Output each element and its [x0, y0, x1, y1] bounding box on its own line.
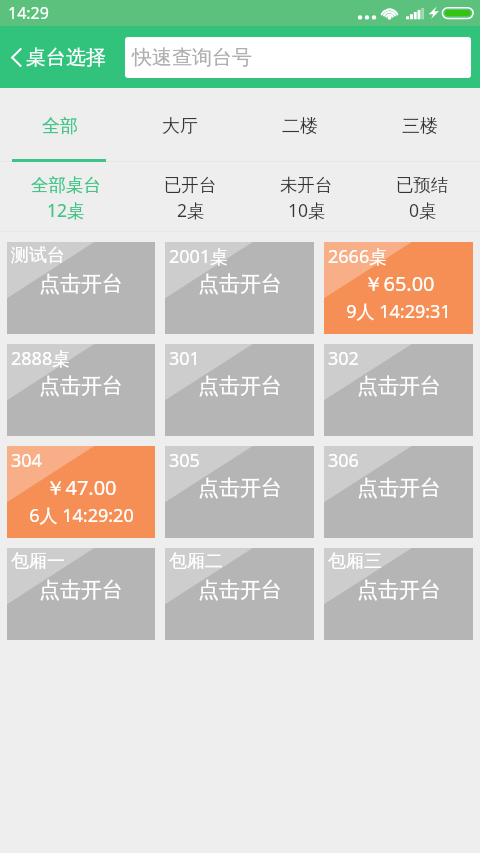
button[interactable]: 测试台	[7, 242, 155, 334]
button[interactable]: 301	[165, 344, 314, 436]
button[interactable]: 快速查询台号	[125, 37, 471, 78]
staticText: 点击开台	[198, 475, 282, 501]
staticText: 302	[328, 346, 359, 371]
button[interactable]: 305	[165, 446, 314, 538]
button[interactable]: 302	[324, 344, 473, 436]
staticText: 测试台	[11, 244, 65, 267]
staticText: 304	[11, 448, 42, 473]
button[interactable]: 2001桌	[165, 242, 314, 334]
staticText: 2666桌	[328, 244, 388, 269]
staticText: 点击开台	[357, 475, 441, 501]
staticText: 2001桌	[169, 244, 229, 269]
staticText: 包厢一	[11, 550, 65, 573]
staticText: 点击开台	[198, 271, 282, 297]
button[interactable]: 大厅	[120, 88, 240, 162]
staticText: 点击开台	[39, 373, 123, 399]
staticText: 全部桌台	[31, 174, 101, 196]
staticText: 2888桌	[11, 346, 71, 371]
staticText: 14:29	[8, 2, 49, 24]
staticText: 点击开台	[198, 373, 282, 399]
staticText: 桌台选择	[26, 45, 106, 70]
staticText: 二楼	[282, 115, 318, 138]
staticText: 305	[169, 448, 200, 473]
button[interactable]: 桌台选择	[0, 35, 114, 80]
button[interactable]: 2666桌	[324, 242, 473, 334]
staticText: 三楼	[402, 115, 438, 138]
staticText: 9人 14:29:31	[346, 299, 451, 324]
button[interactable]: 已预结	[396, 162, 449, 232]
button[interactable]: 包厢二	[165, 548, 314, 640]
button[interactable]: 包厢三	[324, 548, 473, 640]
button[interactable]: 全部	[0, 88, 120, 162]
button[interactable]: 全部桌台	[31, 162, 101, 232]
button[interactable]: 二楼	[240, 88, 360, 162]
staticText: ￥47.00	[45, 474, 117, 501]
staticText: ￥65.00	[363, 270, 435, 297]
staticText: 点击开台	[39, 577, 123, 603]
staticText: 0桌	[409, 198, 437, 222]
staticText: 未开台	[280, 174, 333, 196]
staticText: 301	[169, 346, 200, 371]
staticText: 2桌	[177, 198, 205, 222]
staticText: 全部	[42, 115, 78, 138]
staticText: 306	[328, 448, 359, 473]
button[interactable]: 2888桌	[7, 344, 155, 436]
staticText: 点击开台	[357, 373, 441, 399]
staticText: 包厢三	[328, 550, 382, 573]
staticText: 已预结	[396, 174, 449, 196]
staticText: 点击开台	[198, 577, 282, 603]
button[interactable]: 306	[324, 446, 473, 538]
staticText: 快速查询台号	[132, 45, 252, 70]
staticText: 10桌	[288, 198, 326, 222]
staticText: 已开台	[164, 174, 217, 196]
staticText: 6人 14:29:20	[29, 503, 134, 528]
button[interactable]: 已开台	[164, 162, 217, 232]
button[interactable]: 未开台	[280, 162, 333, 232]
staticText: 12桌	[47, 198, 85, 222]
staticText: 包厢二	[169, 550, 223, 573]
staticText: 点击开台	[39, 271, 123, 297]
staticText: 点击开台	[357, 577, 441, 603]
button[interactable]: 包厢一	[7, 548, 155, 640]
button[interactable]: 304	[7, 446, 155, 538]
staticText: 大厅	[162, 115, 198, 138]
button[interactable]: 三楼	[360, 88, 480, 162]
